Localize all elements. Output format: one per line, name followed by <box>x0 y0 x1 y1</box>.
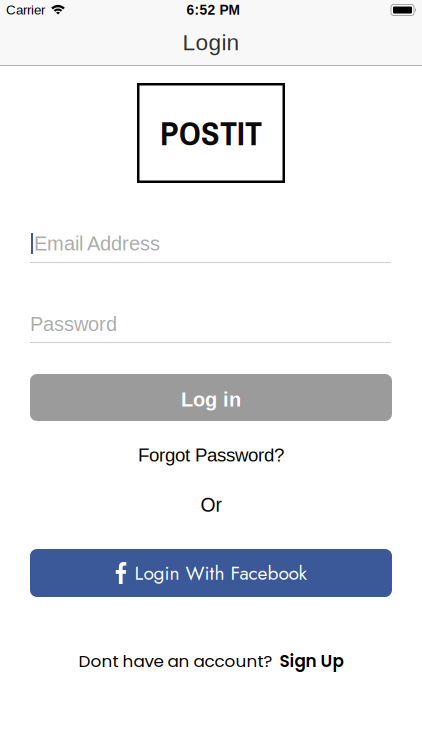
staticText: Email Address <box>34 232 160 255</box>
staticText: Password <box>30 313 117 335</box>
button[interactable]: Email Address <box>0 233 422 263</box>
button[interactable]: Password <box>0 314 422 343</box>
staticText: Forgot Password? <box>138 445 284 465</box>
staticText: 6:52 PM <box>186 2 239 18</box>
staticText: Or <box>200 494 221 516</box>
staticText: Log in <box>181 388 241 411</box>
staticText: Dont have an account? <box>78 649 272 673</box>
button[interactable]: Log in <box>0 374 422 421</box>
staticText: Login <box>182 30 239 55</box>
staticText: Sign Up <box>279 649 343 673</box>
staticText: POSTIT <box>160 110 262 156</box>
button[interactable]: Dont have an account? <box>78 650 343 672</box>
staticText: Login With Facebook <box>134 559 306 587</box>
staticText: Carrier <box>6 3 45 17</box>
button[interactable]: Login With Facebook <box>0 549 422 597</box>
button[interactable]: Forgot Password? <box>138 444 284 466</box>
